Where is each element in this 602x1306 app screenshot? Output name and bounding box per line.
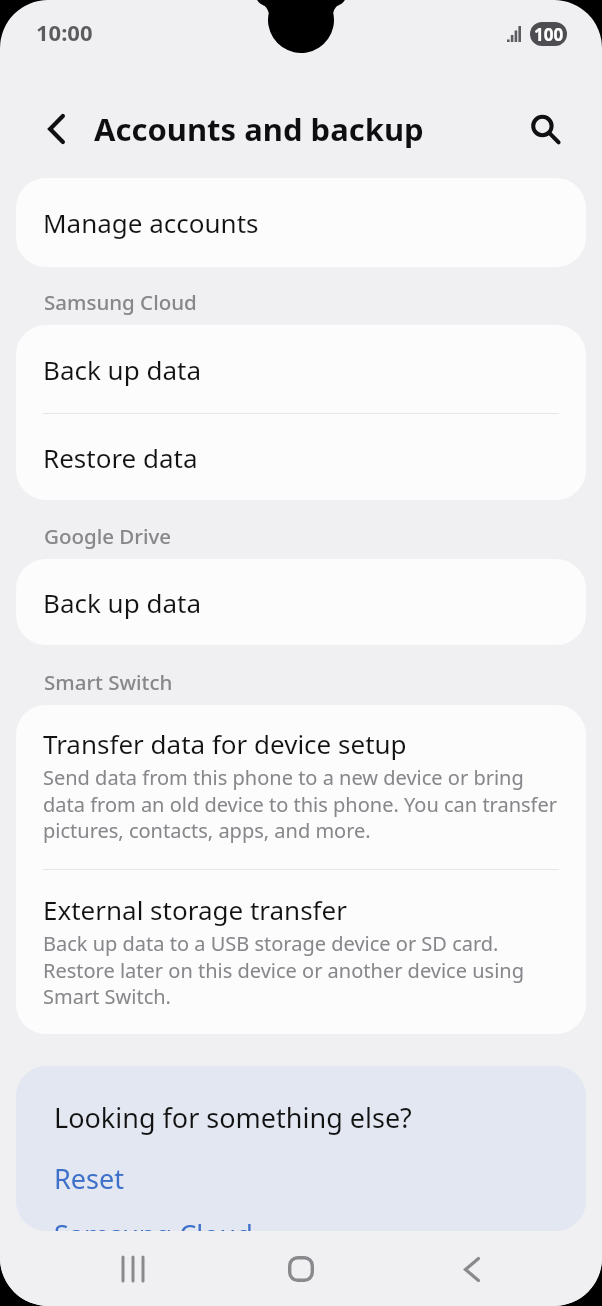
staticText: Restore data bbox=[43, 440, 198, 475]
button[interactable]: Looking for something else? bbox=[54, 1099, 412, 1136]
staticText: Transfer data for device setup bbox=[43, 726, 407, 761]
staticText: Samsung Cloud bbox=[44, 288, 197, 316]
staticText: Back up data bbox=[43, 585, 201, 620]
staticText: Back up data bbox=[43, 352, 201, 387]
button[interactable]: Restore data bbox=[16, 414, 586, 500]
staticText: Back up data to a USB storage device or … bbox=[43, 930, 560, 1010]
staticText: Send data from this phone to a new devic… bbox=[43, 764, 560, 844]
staticText: External storage transfer bbox=[43, 892, 347, 927]
button[interactable]: Recent apps bbox=[98, 1234, 168, 1304]
staticText: 10:00 bbox=[36, 17, 93, 47]
staticText: Accounts and backup bbox=[94, 108, 424, 150]
staticText: 100 bbox=[534, 23, 564, 46]
button[interactable]: Back up data bbox=[16, 559, 586, 645]
button[interactable]: Transfer data for device setup bbox=[16, 705, 586, 869]
button[interactable]: Back bbox=[437, 1234, 507, 1304]
staticText: Smart Switch bbox=[44, 668, 173, 696]
button[interactable]: Reset bbox=[54, 1160, 124, 1197]
button[interactable]: Back up data bbox=[16, 325, 586, 413]
button[interactable]: Manage accounts bbox=[16, 178, 586, 267]
staticText: Google Drive bbox=[44, 522, 172, 550]
button[interactable]: External storage transfer bbox=[16, 870, 586, 1034]
button[interactable]: Search bbox=[518, 100, 574, 156]
button[interactable]: Samsung Cloud bbox=[54, 1216, 253, 1231]
staticText: Manage accounts bbox=[43, 205, 259, 240]
button[interactable]: Home bbox=[266, 1234, 336, 1304]
button[interactable]: Navigate up bbox=[32, 104, 81, 153]
